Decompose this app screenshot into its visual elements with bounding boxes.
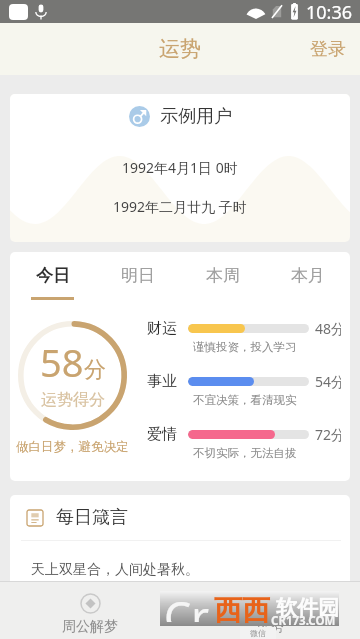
button[interactable]: 本周 xyxy=(180,252,265,300)
staticText: 今日 xyxy=(36,265,70,286)
staticText: 不宜决策，看清现实 xyxy=(193,393,297,407)
staticText: 爱情 xyxy=(147,425,177,444)
button[interactable]: 明日 xyxy=(95,252,180,300)
staticText: Cr xyxy=(164,587,209,622)
staticText: 周公解梦 xyxy=(62,618,118,636)
staticText: 财运 xyxy=(147,319,177,338)
staticText: 运势 xyxy=(256,618,284,636)
staticText: 事业 xyxy=(147,372,177,391)
staticText: 48分 xyxy=(315,319,341,338)
staticText: 做白日梦，避免决定 xyxy=(16,439,129,455)
staticText: 示例用户 xyxy=(160,105,232,128)
other: 周公解梦 xyxy=(80,593,101,614)
staticText: 72分 xyxy=(315,425,341,444)
staticText: 运势得分 xyxy=(41,390,105,410)
button[interactable]: 本月 xyxy=(265,252,350,300)
staticText: 明日 xyxy=(121,265,155,286)
staticText: 登录 xyxy=(310,38,346,61)
staticText: 不切实际，无法自拔 xyxy=(193,446,297,460)
staticText: 58 xyxy=(40,336,84,388)
staticText: 西西 xyxy=(214,593,270,628)
staticText: CR173.COM xyxy=(271,613,336,629)
staticText: 运势 xyxy=(159,36,201,62)
staticText: 每日箴言 xyxy=(56,506,128,529)
button[interactable]: 登录 xyxy=(294,26,360,73)
button[interactable]: 周公解梦 xyxy=(0,582,180,639)
button[interactable]: 运势 xyxy=(180,582,360,639)
staticText: 分 xyxy=(84,356,106,384)
staticText: 54分 xyxy=(315,372,341,391)
staticText: 软件园 xyxy=(276,595,339,621)
staticText: 1992年二月廿九 子时 xyxy=(113,197,247,216)
staticText: 10:36 xyxy=(306,0,353,23)
staticText: 谨慎投资，投入学习 xyxy=(193,340,297,354)
button[interactable]: 今日 xyxy=(10,252,95,300)
staticText: 本月 xyxy=(291,265,325,286)
staticText: 本周 xyxy=(206,265,240,286)
staticText: 天上双星合，人间处暑秋。 xyxy=(31,561,199,579)
other: 运势 xyxy=(260,593,281,614)
staticText: 微信 xyxy=(250,628,266,638)
button[interactable]: 运势 xyxy=(139,26,221,72)
staticText: 1992年4月1日 0时 xyxy=(122,158,238,177)
